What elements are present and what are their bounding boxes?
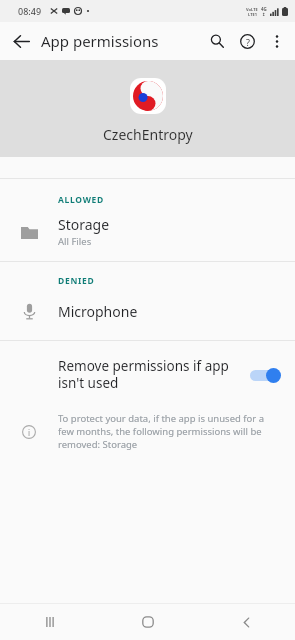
staticText: 4G — [261, 6, 267, 12]
button[interactable]: Help — [232, 26, 262, 56]
button[interactable]: Back — [197, 604, 295, 640]
staticText: 08:49 — [18, 5, 42, 17]
staticText: Remove permissions if app isn't used — [58, 357, 244, 392]
staticText: CzechEntropy — [103, 125, 193, 144]
button[interactable]: More options — [262, 26, 292, 56]
staticText: LTE1 — [248, 12, 257, 17]
staticText: ↕ — [262, 12, 266, 17]
staticText: Storage — [58, 215, 110, 234]
staticText: DENIED — [58, 275, 295, 287]
button[interactable]: Search — [202, 26, 232, 56]
staticText: Microphone — [58, 302, 138, 321]
button[interactable]: Home — [99, 604, 197, 640]
staticText: ? — [246, 36, 250, 48]
staticText: All Files — [58, 235, 92, 248]
staticText: VoLTE — [246, 7, 258, 12]
button[interactable]: Storage — [0, 209, 295, 254]
staticText: To protect your data, if the app is unus… — [58, 412, 279, 451]
staticText: App permissions — [41, 31, 159, 51]
button[interactable]: Remove permissions if app isn't used — [0, 341, 295, 404]
button[interactable]: Microphone — [0, 290, 295, 332]
staticText: i — [28, 427, 31, 438]
button[interactable]: Recent apps — [0, 604, 99, 640]
staticText: ALLOWED — [58, 194, 295, 206]
button[interactable]: Back — [5, 25, 37, 57]
